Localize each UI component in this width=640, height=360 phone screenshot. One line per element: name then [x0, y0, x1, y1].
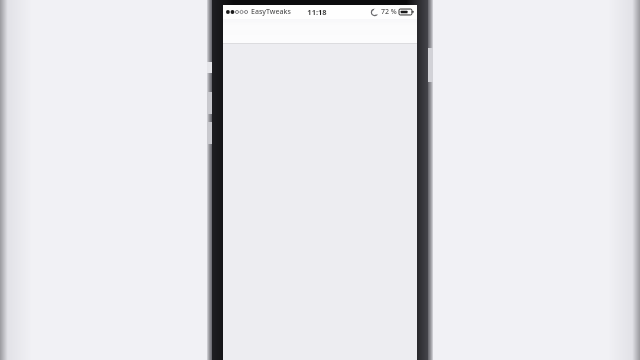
- staticText: 11:18: [307, 7, 327, 17]
- staticText: 72 %: [381, 7, 397, 17]
- staticText: EasyTweaks: [251, 7, 291, 17]
